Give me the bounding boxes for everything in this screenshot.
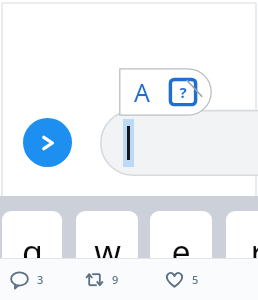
button[interactable]: Send — [23, 118, 72, 167]
button[interactable] — [100, 110, 258, 176]
button[interactable]: e — [150, 211, 212, 269]
button[interactable]: Text formatting — [125, 69, 159, 115]
button[interactable]: q — [2, 211, 62, 269]
button[interactable]: w — [76, 211, 138, 269]
staticText: 3 — [37, 272, 44, 287]
button[interactable]: Like — [165, 266, 199, 292]
staticText: A — [134, 75, 150, 109]
staticText: 9 — [112, 272, 119, 287]
button[interactable]: Reply — [10, 266, 44, 292]
staticText: w — [94, 229, 121, 269]
staticText: 5 — [192, 272, 199, 287]
button[interactable]: Unsupported emoji — [165, 69, 201, 115]
staticText: r — [250, 229, 258, 269]
staticText: q — [22, 229, 43, 269]
button[interactable]: r — [226, 211, 258, 269]
button[interactable]: Retweet — [85, 266, 119, 292]
staticText: e — [171, 229, 191, 269]
staticText: ? — [179, 82, 187, 102]
